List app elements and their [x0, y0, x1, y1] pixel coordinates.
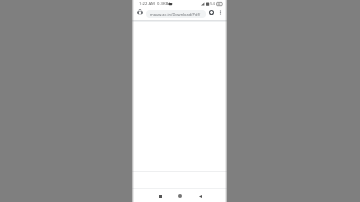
button[interactable]: Stop loading	[207, 8, 216, 17]
button[interactable]: Back	[194, 190, 206, 202]
staticText: 54	[210, 1, 215, 7]
staticText: 1:22 AM 0.3KB/s	[139, 1, 172, 7]
button[interactable]: Site information	[135, 7, 144, 16]
button[interactable]: Recents	[154, 190, 166, 202]
staticText: mauw.ac.in/Download/Pdf/%2C%2C	[150, 12, 206, 17]
button[interactable]: mauw.ac.in/Download/Pdf/%2C%2C	[146, 10, 206, 18]
button[interactable]: Home	[174, 190, 186, 202]
button[interactable]: More options	[216, 8, 225, 17]
